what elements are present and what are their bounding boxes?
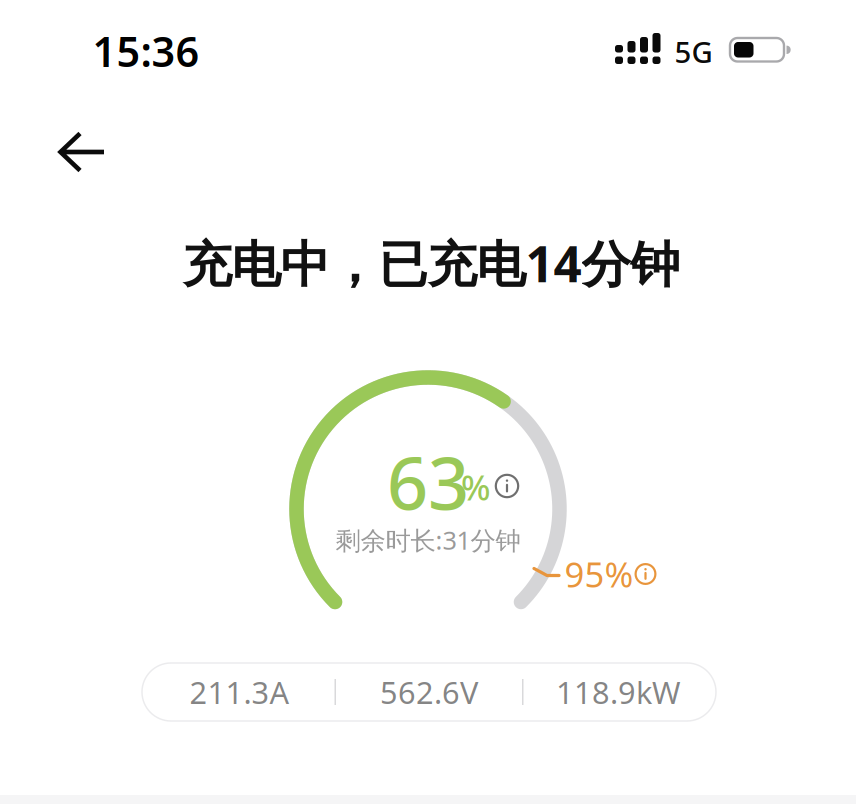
staticText: 211.3A — [189, 672, 289, 712]
button[interactable]: Charge info — [494, 473, 520, 499]
button[interactable]: Back — [54, 128, 110, 176]
staticText: 15:36 — [92, 24, 199, 78]
button[interactable]: Charge limit info — [564, 551, 658, 597]
staticText: % — [461, 464, 491, 510]
staticText: 63 — [387, 434, 469, 530]
staticText: 118.9kW — [556, 672, 681, 712]
staticText: 562.6V — [380, 672, 478, 712]
staticText: 5G — [674, 32, 712, 71]
staticText: 剩余时长:31分钟 — [335, 523, 520, 557]
staticText: 充电中，已充电14分钟 — [182, 230, 679, 296]
staticText: 95% — [564, 551, 633, 597]
